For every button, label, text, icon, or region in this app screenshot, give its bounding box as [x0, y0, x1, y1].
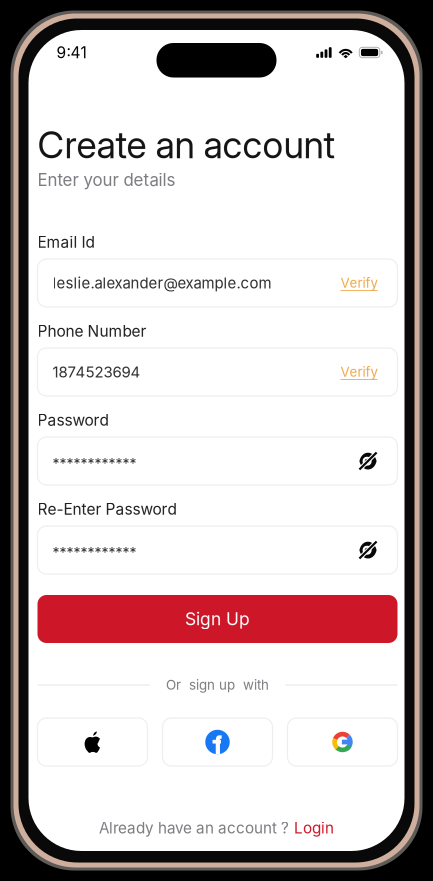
- button[interactable]: Show re-entered password: [358, 540, 377, 559]
- staticText: Or sign up with: [166, 677, 269, 693]
- staticText: leslie.alexander@example.com: [52, 274, 271, 292]
- staticText: 9:41: [56, 43, 86, 62]
- staticText: Email Id: [37, 233, 94, 251]
- staticText: ************: [52, 455, 136, 472]
- button[interactable]: Show password: [358, 451, 377, 470]
- button[interactable]: Sign up with Apple: [37, 718, 147, 766]
- button[interactable]: Sign up with Facebook: [162, 718, 272, 766]
- button[interactable]: Verify: [340, 275, 377, 291]
- staticText: Login: [294, 819, 334, 837]
- staticText: Verify: [340, 275, 377, 291]
- staticText: Already have an account ?: [99, 819, 289, 837]
- staticText: Verify: [340, 364, 377, 380]
- button[interactable]: Sign up with Google: [287, 718, 397, 766]
- staticText: 1874523694: [52, 363, 140, 381]
- staticText: Create an account: [37, 123, 335, 167]
- button[interactable]: Sign Up: [37, 595, 397, 643]
- button[interactable]: Already have an account ?: [28, 818, 404, 838]
- staticText: Re-Enter Password: [37, 500, 176, 518]
- staticText: ************: [52, 544, 136, 561]
- staticText: Enter your details: [37, 170, 175, 190]
- staticText: Password: [37, 411, 108, 429]
- staticText: Sign Up: [185, 608, 250, 629]
- staticText: Phone Number: [37, 322, 146, 340]
- button[interactable]: Verify: [340, 364, 377, 380]
